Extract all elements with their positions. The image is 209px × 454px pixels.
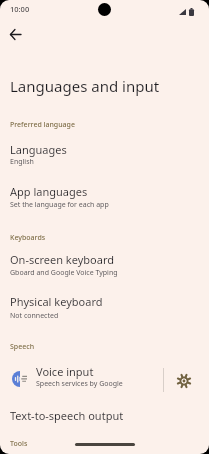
- button[interactable]: Languages: [0, 134, 209, 172]
- staticText: Physical keyboard: [10, 294, 103, 309]
- button[interactable]: App languages: [0, 176, 209, 214]
- staticText: Preferred language: [10, 120, 75, 130]
- button[interactable]: On-screen keyboard: [0, 244, 209, 282]
- staticText: Keyboards: [10, 233, 46, 243]
- staticText: Speech services by Google: [36, 379, 123, 389]
- staticText: Languages and input: [10, 76, 160, 96]
- staticText: Not connected: [10, 311, 59, 321]
- button[interactable]: [3, 22, 27, 46]
- staticText: Languages: [10, 142, 67, 157]
- staticText: 10:00: [10, 4, 30, 14]
- staticText: App languages: [10, 184, 88, 199]
- button[interactable]: [169, 366, 199, 396]
- staticText: Voice input: [36, 364, 94, 379]
- staticText: Text-to-speech output: [10, 408, 124, 423]
- button[interactable]: Text-to-speech output: [0, 400, 209, 430]
- staticText: On-screen keyboard: [10, 252, 115, 267]
- staticText: Tools: [10, 439, 28, 449]
- staticText: Set the language for each app: [10, 200, 109, 210]
- button[interactable]: Voice input: [0, 362, 163, 398]
- staticText: English: [10, 157, 34, 167]
- staticText: Speech: [10, 342, 35, 352]
- button[interactable]: Physical keyboard: [0, 286, 209, 324]
- staticText: Gboard and Google Voice Typing: [10, 268, 118, 278]
